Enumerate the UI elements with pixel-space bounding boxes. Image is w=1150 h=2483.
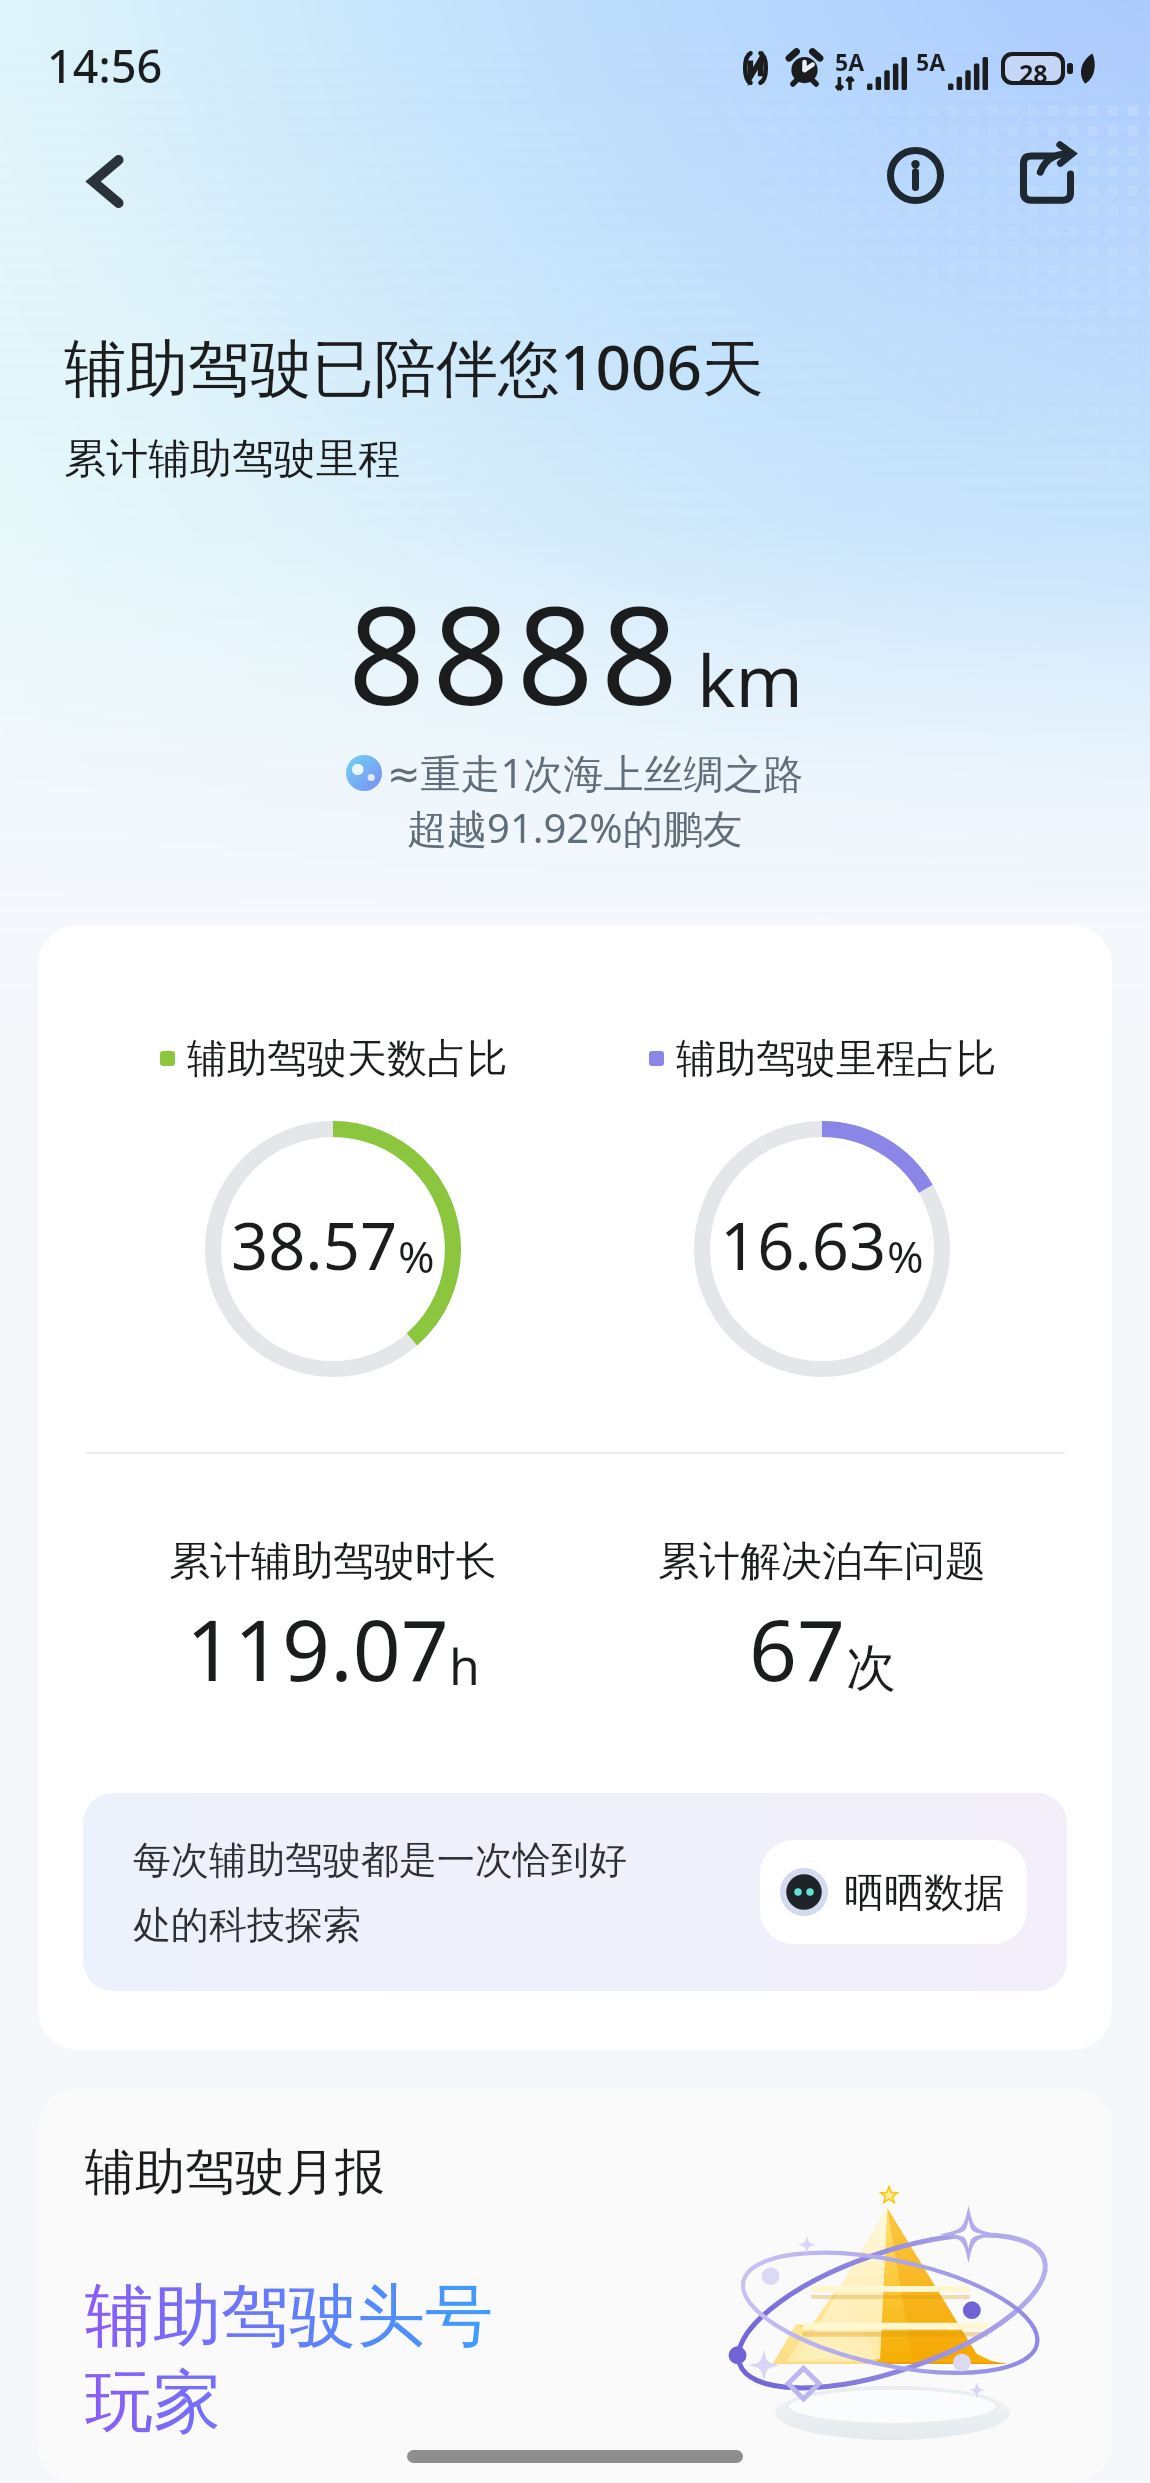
staticText: 累计辅助驾驶时长 [169,1536,497,1588]
staticText: 14:56 [47,35,163,96]
staticText: 处的科技探索 [133,1901,361,1949]
staticText: 辅助驾驶里程占比 [676,1033,996,1083]
button[interactable]: Info [875,135,955,215]
staticText: 119.07 [186,1591,449,1705]
staticText: 辅助驾驶已陪伴您1006天 [64,324,764,409]
staticText: 5A [916,46,946,77]
staticText: 16.63 [720,1201,887,1290]
button[interactable]: 辅助驾驶月报 [38,2088,1112,2483]
staticText: % [398,1226,435,1286]
button[interactable]: Back [67,143,143,219]
staticText: 每次辅助驾驶都是一次恰到好 [133,1836,627,1884]
staticText: 8888 [348,561,685,745]
staticText: 28 [1019,56,1048,81]
staticText: 67 [749,1591,846,1705]
staticText: 5A [835,46,865,77]
staticText: 辅助驾驶月报 [85,2141,385,2204]
button[interactable]: 晒晒数据 [760,1840,1027,1944]
staticText: 次 [846,1637,896,1700]
staticText: km [697,630,803,728]
staticText: % [887,1226,924,1286]
staticText: 超越91.92%的鹏友 [407,800,743,855]
staticText: 辅助驾驶头号 玩家 [85,2274,493,2445]
staticText: 累计解决泊车问题 [658,1536,986,1588]
staticText: 38.57 [231,1201,398,1290]
staticText: 晒晒数据 [844,1867,1004,1917]
staticText: 累计辅助驾驶里程 [64,433,400,486]
staticText: 辅助驾驶天数占比 [187,1033,507,1083]
button[interactable]: Share [1007,135,1087,215]
staticText: ≈重走1次海上丝绸之路 [387,745,804,800]
staticText: h [449,1632,480,1700]
